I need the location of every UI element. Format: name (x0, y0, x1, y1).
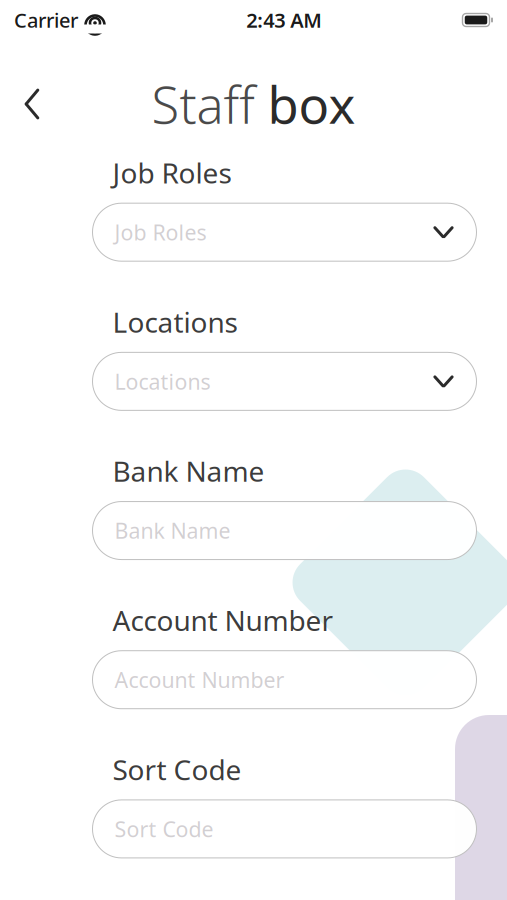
staticText: Carrier (14, 7, 78, 33)
staticText: Sort Code (114, 815, 213, 843)
staticText: Locations (114, 367, 210, 395)
staticText: Sort Code (112, 751, 241, 788)
staticText: Bank Name (114, 516, 230, 545)
staticText: Job Roles (112, 154, 231, 191)
button[interactable]: Job Roles (92, 203, 476, 261)
button[interactable]: Sort Code (92, 800, 476, 858)
button[interactable]: Locations (92, 352, 476, 410)
staticText: Job Roles (114, 218, 206, 246)
staticText: Account Number (112, 601, 333, 639)
button[interactable]: Back (6, 78, 58, 130)
staticText: 2:43 AM (246, 7, 322, 33)
staticText: Account Number (114, 666, 284, 694)
staticText: box (254, 70, 355, 138)
button[interactable]: Bank Name (92, 501, 476, 559)
button[interactable]: Account Number (92, 651, 476, 709)
staticText: Locations (112, 303, 237, 340)
staticText: Staff (151, 70, 254, 138)
staticText: Bank Name (112, 452, 264, 490)
